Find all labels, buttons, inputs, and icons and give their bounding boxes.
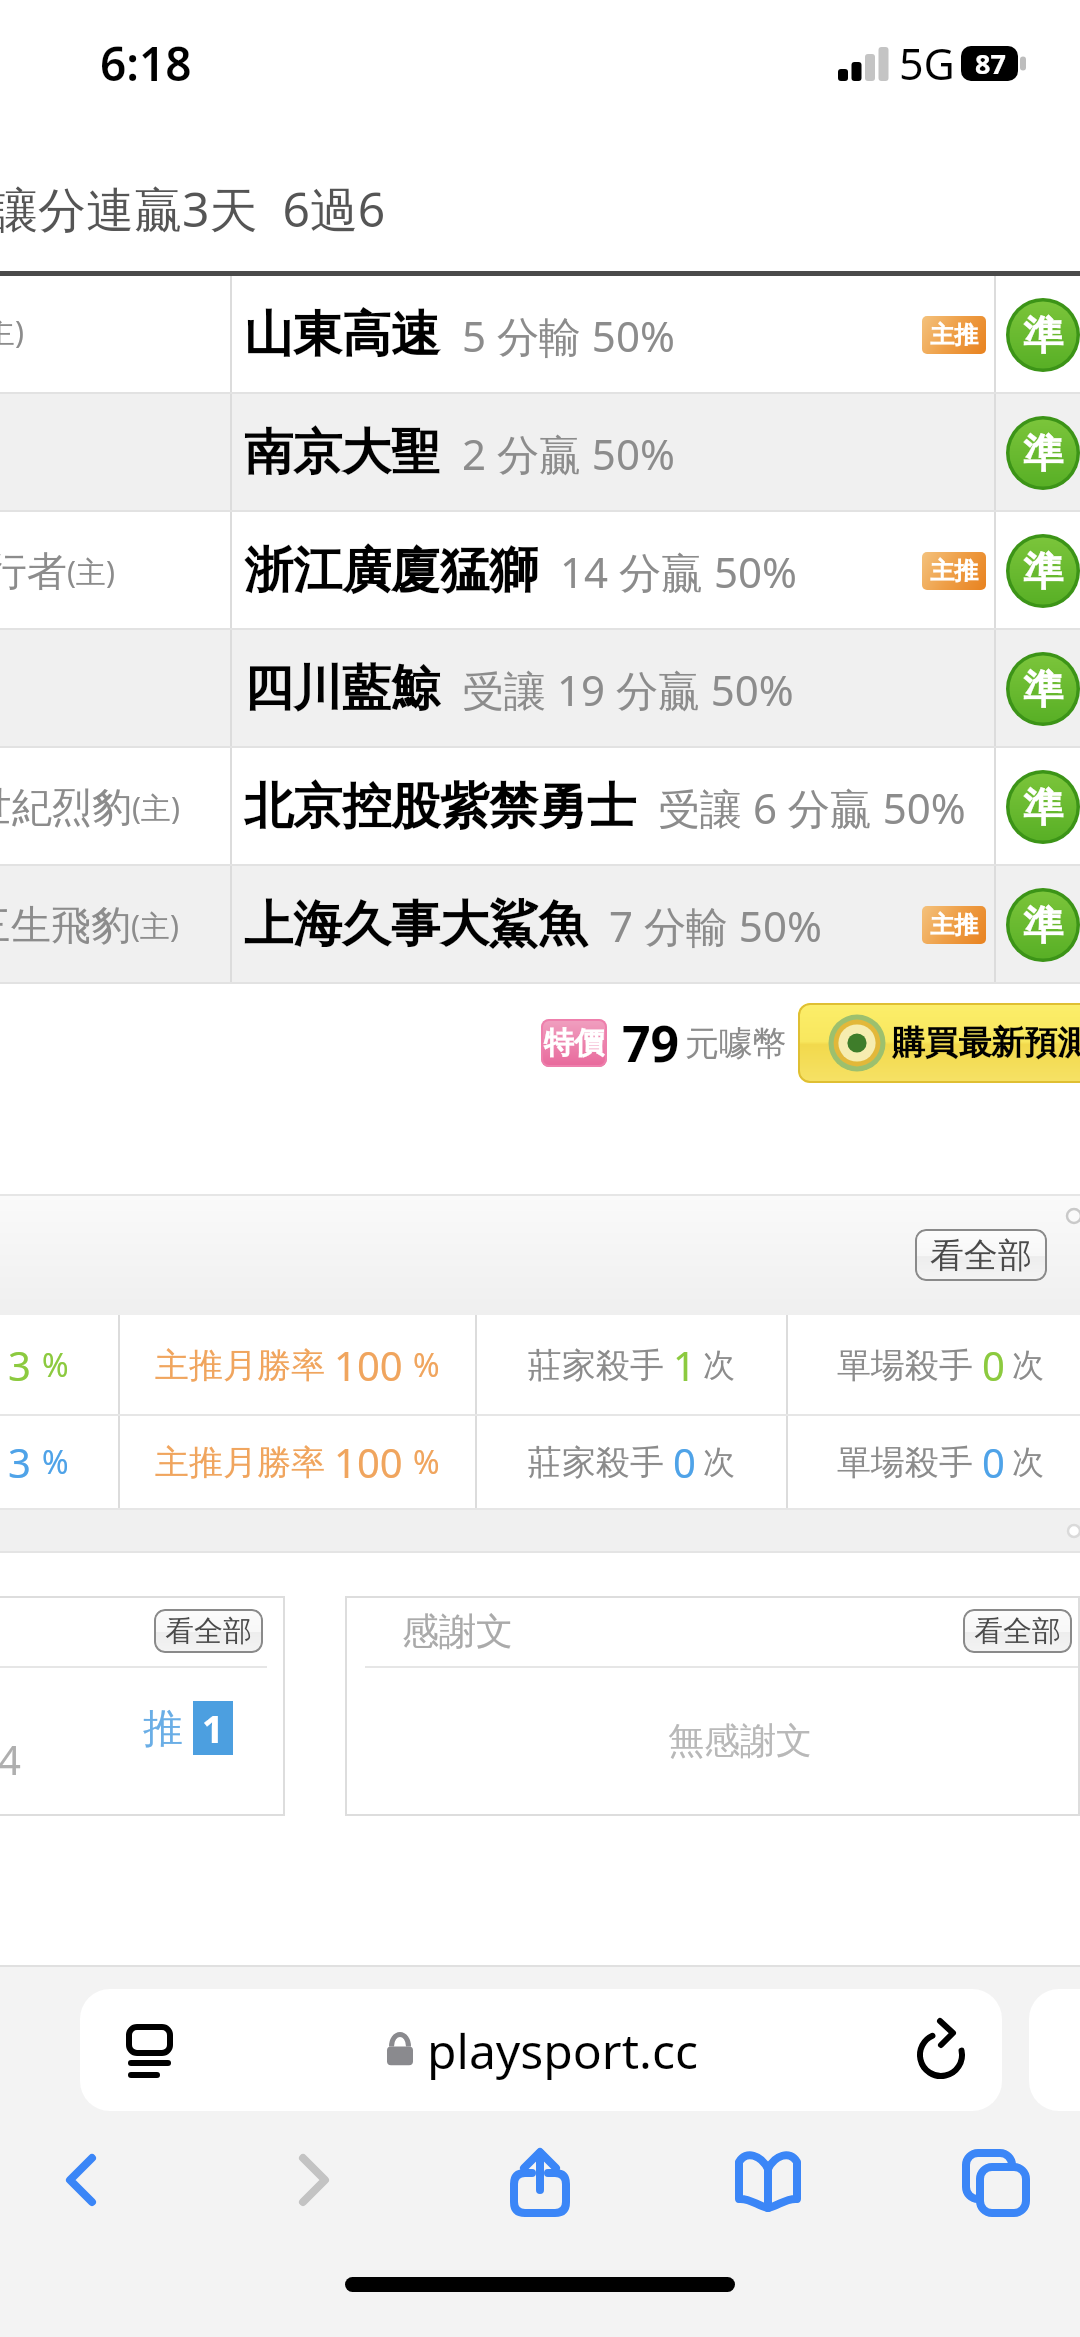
staticText: 主推 [930, 556, 978, 586]
button[interactable]: Page settings [80, 1989, 1002, 2111]
staticText: 先行者 [0, 546, 67, 596]
staticText: 元噱幣 [685, 1022, 787, 1065]
staticText: playsport.cc [427, 2018, 698, 2083]
staticText: 陽三生飛豹 [0, 900, 131, 950]
staticText: 準 [1023, 664, 1063, 714]
staticText: 受讓 6 分贏 50% [658, 779, 966, 836]
staticText: 看全部 [165, 1613, 252, 1650]
staticText: 主推 [930, 910, 978, 940]
staticText: % [42, 1440, 69, 1484]
staticText: 莊家殺手 [528, 1344, 664, 1387]
staticText: 準 [1023, 782, 1063, 832]
button[interactable]: Forward [269, 2130, 359, 2230]
button[interactable]: 四川藍鯨 [0, 630, 1080, 748]
button[interactable]: 南京大聖 [0, 394, 1080, 512]
staticText: 感謝文 [402, 1608, 513, 1655]
staticText: 過4 [0, 1732, 21, 1787]
staticText: 1 [202, 1702, 224, 1754]
staticText: 主推月勝率 [155, 1344, 325, 1387]
staticText: 次 [1012, 1442, 1044, 1482]
staticText: 14 分贏 50% [560, 543, 797, 600]
staticText: 單場殺手 [837, 1344, 973, 1387]
staticText: 次 [703, 1442, 735, 1482]
staticText: 6:18 [100, 32, 192, 95]
staticText: 上海久事大鯊魚 [244, 894, 587, 956]
button[interactable]: Share [495, 2130, 585, 2230]
staticText: 主) [0, 311, 24, 352]
staticText: 無感謝文 [668, 1718, 812, 1763]
staticText: 準 [1023, 310, 1063, 360]
staticText: 5G [899, 34, 955, 93]
staticText: 次 [1012, 1345, 1044, 1385]
staticText: 主推月勝率 [155, 1441, 325, 1484]
staticText: 新世紀烈豹 [0, 782, 132, 832]
staticText: % [413, 1440, 440, 1484]
button[interactable]: 看全部 [154, 1609, 263, 1653]
staticText: 100 [334, 1338, 403, 1392]
staticText: (主) [67, 551, 115, 592]
other: Page settings [127, 2024, 171, 2076]
staticText: 單場殺手 [837, 1441, 973, 1484]
staticText: % [42, 1343, 69, 1387]
staticText: 7 分輸 50% [609, 897, 822, 954]
staticText: (主) [132, 787, 180, 828]
button[interactable]: 看全部 [915, 1229, 1047, 1281]
staticText: 3 [8, 1338, 31, 1392]
button[interactable]: 先行者 [0, 512, 1080, 630]
staticText: 四川藍鯨 [244, 658, 440, 720]
staticText: 準 [1023, 546, 1063, 596]
button[interactable]: 看全部 [963, 1609, 1072, 1653]
staticText: (主) [131, 905, 179, 946]
staticText: 100 [334, 1435, 403, 1489]
button[interactable]: Bookmarks [723, 2130, 813, 2230]
staticText: 推 [143, 1703, 183, 1753]
staticText: 3 [8, 1435, 31, 1489]
staticText: 2 分贏 50% [462, 425, 675, 482]
staticText: 87 [962, 45, 1019, 82]
staticText: 次 [703, 1345, 735, 1385]
staticText: 5 分輸 50% [462, 307, 675, 364]
button[interactable]: 主) [0, 276, 1080, 394]
staticText: 購買最新預測 [892, 1022, 1080, 1064]
staticText: 0 [982, 1435, 1005, 1489]
staticText: 準 [1023, 900, 1063, 950]
staticText: 主推 [930, 320, 978, 350]
staticText: 1 [673, 1338, 696, 1392]
other: Reload [910, 2018, 974, 2082]
button[interactable]: 購買最新預測 [798, 1003, 1080, 1083]
staticText: 看全部 [930, 1234, 1032, 1277]
staticText: 浙江廣廈猛獅 [244, 540, 538, 602]
staticText: 看全部 [974, 1613, 1061, 1650]
button[interactable]: 新世紀烈豹 [0, 748, 1080, 866]
staticText: 南京大聖 [244, 422, 440, 484]
staticText: 79 [622, 1009, 680, 1077]
staticText: 莊家殺手 [528, 1441, 664, 1484]
staticText: 準 [1023, 428, 1063, 478]
staticText: 讓分連贏3天 6過6 [0, 176, 386, 242]
staticText: 特價 [544, 1024, 604, 1062]
staticText: % [413, 1343, 440, 1387]
staticText: 受讓 19 分贏 50% [462, 661, 794, 718]
button[interactable]: Back [36, 2130, 126, 2230]
staticText: 0 [982, 1338, 1005, 1392]
button[interactable]: Tabs [952, 2130, 1042, 2230]
staticText: 0 [673, 1435, 696, 1489]
staticText: 北京控股紫禁勇士 [244, 776, 636, 838]
button[interactable]: 陽三生飛豹 [0, 866, 1080, 984]
staticText: 山東高速 [244, 304, 440, 366]
